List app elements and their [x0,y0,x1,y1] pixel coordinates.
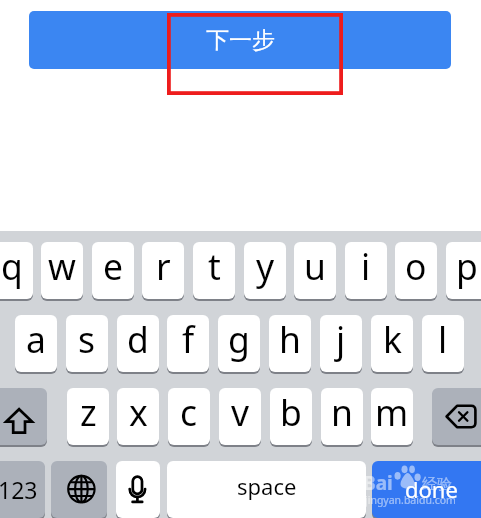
staticText: p [456,242,478,290]
button[interactable]: v [219,388,261,445]
button[interactable]: k [371,315,413,372]
staticText: x [129,388,148,436]
staticText: r [156,242,171,290]
staticText: e [103,242,124,290]
button[interactable]: c [168,388,210,445]
button[interactable]: Backspace [432,388,481,445]
staticText: k [383,315,402,363]
staticText: z [80,388,97,436]
button[interactable]: Shift [0,388,47,445]
button[interactable]: w [41,242,83,299]
button[interactable]: done [372,461,481,518]
button[interactable]: x [117,388,159,445]
button[interactable]: a [15,315,57,372]
staticText: v [231,388,250,436]
staticText: d [127,315,149,363]
button[interactable]: i [345,242,387,299]
staticText: q [1,242,23,290]
button[interactable]: b [270,388,312,445]
staticText: w [48,242,76,290]
button[interactable]: l [422,315,464,372]
staticText: space [237,471,297,501]
button[interactable]: n [321,388,363,445]
staticText: t [208,242,221,290]
button[interactable]: space [167,461,366,518]
staticText: s [78,315,96,363]
button[interactable]: f [167,315,209,372]
button[interactable]: d [117,315,159,372]
button[interactable]: m [371,388,413,445]
staticText: j [336,315,346,363]
button[interactable]: 123 [0,461,45,518]
button[interactable]: j [320,315,362,372]
staticText: 经验 [422,475,452,494]
button[interactable]: 下一步 [29,11,451,69]
staticText: done [405,474,458,504]
staticText: n [331,388,353,436]
staticText: Bai [363,470,393,496]
button[interactable]: r [142,242,184,299]
button[interactable]: z [67,388,109,445]
staticText: 123 [0,474,38,505]
staticText: jingyan.baidu.com [365,493,456,507]
staticText: h [279,315,301,363]
button[interactable]: q [0,242,33,299]
button[interactable]: u [294,242,336,299]
staticText: i [361,242,371,290]
button[interactable]: y [244,242,286,299]
staticText: b [280,388,302,436]
staticText: o [405,242,427,290]
staticText: y [256,242,275,290]
staticText: m [375,388,409,436]
button[interactable]: o [395,242,437,299]
staticText: c [180,388,198,436]
button[interactable]: e [92,242,134,299]
staticText: f [182,315,195,363]
button[interactable]: Dictation [116,461,160,518]
staticText: a [26,315,46,363]
button[interactable]: p [446,242,481,299]
staticText: l [438,315,448,363]
staticText: g [228,315,250,363]
staticText: u [304,242,326,290]
button[interactable]: h [269,315,311,372]
staticText: 下一步 [206,26,275,55]
button[interactable]: t [193,242,235,299]
button[interactable]: g [218,315,260,372]
button[interactable]: Switch keyboard [51,461,107,518]
button[interactable]: s [66,315,108,372]
